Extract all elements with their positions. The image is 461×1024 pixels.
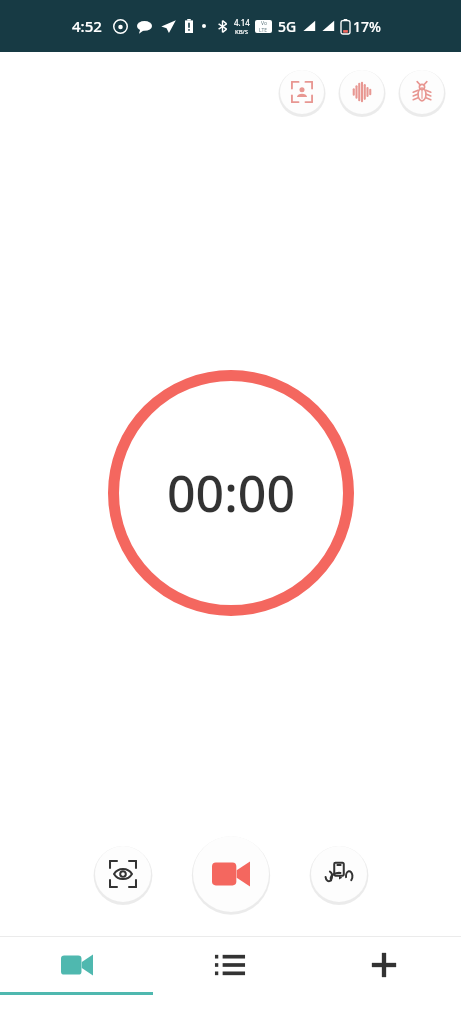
button[interactable]: Record tab [0, 936, 153, 994]
button[interactable]: Audio waveform [340, 70, 384, 114]
staticText: 4:52 [72, 16, 102, 36]
button[interactable]: Preview [95, 846, 151, 902]
button[interactable]: Record video [193, 836, 269, 912]
button[interactable]: Rotate orientation [311, 846, 367, 902]
button[interactable]: Face detection [280, 70, 324, 114]
staticText: Vo [261, 20, 267, 27]
staticText: 00:00 [167, 459, 295, 527]
staticText: 5G [278, 17, 297, 36]
button[interactable]: Recordings list [153, 936, 307, 994]
button[interactable]: Motion detection [400, 70, 444, 114]
button[interactable]: Add new [307, 936, 461, 994]
staticText: LTE [259, 27, 268, 33]
staticText: KB/S [235, 28, 249, 36]
staticText: 17% [353, 17, 381, 36]
staticText: 4.14 [234, 17, 250, 28]
